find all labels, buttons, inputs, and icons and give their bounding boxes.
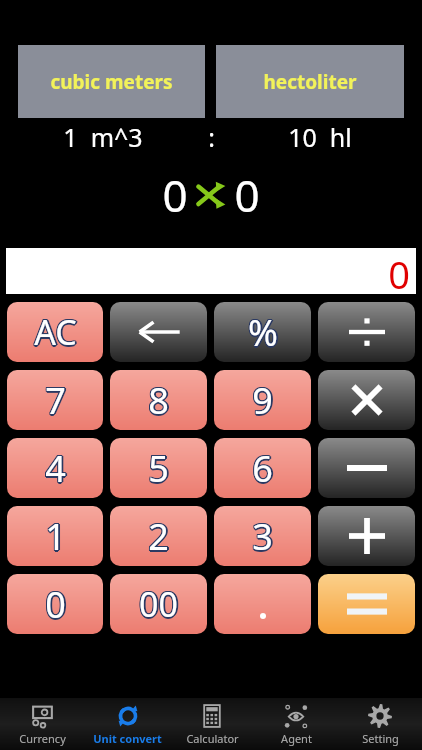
- staticText: 1: [47, 512, 68, 561]
- staticText: 7: [46, 377, 67, 426]
- staticText: 0: [44, 581, 65, 630]
- staticText: 0: [46, 581, 67, 630]
- button[interactable]: ÷: [318, 302, 415, 362]
- staticText: 8: [149, 377, 170, 426]
- button[interactable]: ×: [318, 370, 415, 430]
- staticText: 2: [149, 513, 170, 562]
- staticText: 00: [138, 582, 177, 628]
- staticText: 3: [253, 511, 274, 560]
- staticText: 4: [45, 446, 66, 495]
- button[interactable]: .: [214, 574, 311, 634]
- button[interactable]: −: [318, 438, 415, 498]
- button[interactable]: AC: [7, 302, 103, 362]
- button[interactable]: Currency: [0, 698, 85, 750]
- staticText: Currency: [19, 731, 66, 746]
- staticText: 5: [148, 443, 169, 492]
- staticText: 9: [252, 376, 273, 425]
- button[interactable]: 7: [7, 370, 103, 430]
- staticText: 3: [251, 513, 272, 562]
- staticText: 6: [252, 446, 273, 495]
- staticText: 2: [147, 513, 168, 562]
- button[interactable]: 6: [214, 438, 311, 498]
- button[interactable]: Swap units: [188, 172, 234, 218]
- button[interactable]: ←: [110, 302, 207, 362]
- button[interactable]: Unit convert: [85, 698, 170, 750]
- staticText: AC: [33, 308, 76, 354]
- staticText: %: [249, 307, 279, 356]
- button[interactable]: 9: [214, 370, 311, 430]
- staticText: %: [248, 310, 278, 359]
- staticText: 6: [252, 443, 273, 492]
- staticText: 4: [45, 444, 66, 493]
- button[interactable]: 00: [110, 574, 207, 634]
- staticText: :: [208, 120, 215, 154]
- staticText: 2: [148, 512, 169, 561]
- staticText: AC: [33, 309, 76, 355]
- staticText: 00: [139, 581, 178, 627]
- staticText: AC: [35, 310, 78, 356]
- staticText: Setting: [362, 731, 399, 746]
- staticText: 2: [147, 511, 168, 560]
- button[interactable]: 5: [110, 438, 207, 498]
- button[interactable]: 1: [7, 506, 103, 566]
- button[interactable]: 8: [110, 370, 207, 430]
- staticText: AC: [34, 308, 77, 354]
- staticText: 9: [254, 376, 275, 425]
- button[interactable]: 4: [7, 438, 103, 498]
- staticText: 1 m^3: [63, 120, 143, 154]
- staticText: 0: [44, 579, 65, 628]
- staticText: Agent: [281, 731, 312, 746]
- staticText: 7: [44, 376, 65, 425]
- staticText: %: [247, 308, 277, 357]
- staticText: 3: [252, 512, 273, 561]
- staticText: 6: [253, 445, 274, 494]
- staticText: %: [247, 309, 277, 358]
- staticText: 4: [46, 445, 67, 494]
- staticText: 0: [388, 248, 410, 294]
- staticText: 5: [148, 444, 169, 493]
- staticText: 3: [253, 513, 274, 562]
- staticText: 2: [147, 512, 168, 561]
- staticText: 6: [253, 443, 274, 492]
- staticText: 3: [254, 512, 275, 561]
- staticText: 8: [147, 377, 168, 426]
- button[interactable]: 0: [7, 574, 103, 634]
- staticText: 00: [141, 581, 180, 627]
- staticText: 3: [251, 511, 272, 560]
- staticText: 00: [139, 580, 178, 626]
- staticText: 5: [150, 444, 171, 493]
- button[interactable]: hectoliter: [216, 45, 404, 118]
- staticText: 8: [147, 375, 168, 424]
- button[interactable]: Agent: [254, 698, 338, 750]
- staticText: 7: [47, 376, 68, 425]
- button[interactable]: cubic meters: [18, 45, 205, 118]
- button[interactable]: 0: [6, 248, 416, 294]
- button[interactable]: Setting: [338, 698, 422, 750]
- button[interactable]: 3: [214, 506, 311, 566]
- staticText: 0: [234, 165, 260, 225]
- staticText: 8: [150, 376, 171, 425]
- staticText: 4: [44, 445, 65, 494]
- staticText: 2: [148, 511, 169, 560]
- staticText: AC: [36, 309, 79, 355]
- staticText: 2: [150, 512, 171, 561]
- button[interactable]: Calculator: [170, 698, 254, 750]
- staticText: 00: [139, 583, 178, 629]
- staticText: 5: [147, 445, 168, 494]
- staticText: 4: [47, 444, 68, 493]
- staticText: 00: [138, 580, 177, 626]
- button[interactable]: =: [318, 574, 415, 634]
- staticText: %: [248, 308, 278, 357]
- button[interactable]: 2: [110, 506, 207, 566]
- staticText: 4: [46, 443, 67, 492]
- button[interactable]: +: [318, 506, 415, 566]
- staticText: 1: [45, 514, 66, 563]
- staticText: 3: [252, 514, 273, 563]
- staticText: Calculator: [186, 731, 239, 746]
- button[interactable]: %: [214, 302, 311, 362]
- staticText: 0: [47, 580, 68, 629]
- staticText: 8: [149, 375, 170, 424]
- staticText: 9: [253, 375, 274, 424]
- staticText: 4: [44, 443, 65, 492]
- staticText: 2: [149, 511, 170, 560]
